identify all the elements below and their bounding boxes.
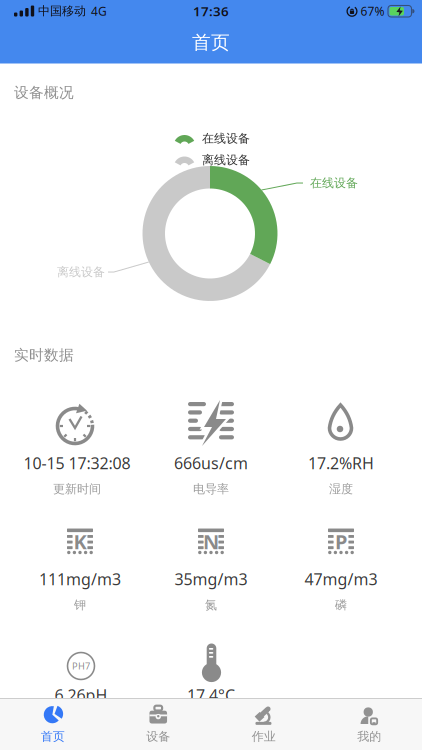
staticText: 17.2%RH [308,452,374,474]
staticText: 47mg/m3 [304,568,377,590]
staticText: 离线设备 [57,265,105,279]
staticText: PH7 [72,660,90,672]
staticText: 67% [360,3,384,19]
staticText: 我的 [357,729,381,744]
staticText: P [335,528,347,555]
staticText: 氮 [205,598,217,612]
staticText: 钾 [74,598,86,612]
button[interactable]: 设备 [105,698,211,750]
staticText: 首页 [192,31,230,54]
staticText: 在线设备 [310,176,358,190]
staticText: 作业 [252,729,276,744]
staticText: 更新时间 [53,482,101,496]
staticText: 磷 [335,598,347,612]
staticText: N [203,528,219,555]
staticText: 电导率 [193,482,229,496]
staticText: 离线设备 [202,153,250,167]
staticText: 首页 [41,729,65,744]
staticText: K [73,528,86,555]
staticText: 17.4°C [187,684,235,706]
staticText: 17:36 [193,2,229,20]
staticText: 6.26pH [54,684,107,706]
button[interactable]: 首页 [0,698,105,750]
button[interactable]: 我的 [316,698,422,750]
staticText: 111mg/m3 [39,568,121,590]
staticText: 实时数据 [14,346,74,364]
staticText: 湿度 [329,482,353,496]
staticText: 4G [91,3,107,19]
staticText: 设备概况 [14,83,74,101]
staticText: 设备 [146,729,170,744]
staticText: 666us/cm [174,452,248,474]
staticText: 35mg/m3 [174,568,247,590]
staticText: 在线设备 [202,131,250,146]
staticText: 中国移动 [38,4,86,18]
button[interactable]: 作业 [211,698,316,750]
staticText: 10-15 17:32:08 [23,452,130,474]
